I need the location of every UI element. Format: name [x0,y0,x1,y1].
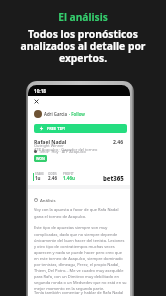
staticText: WON [36,156,45,161]
staticText: Este tipo de apuestas siempre son muy co… [34,225,127,291]
staticText: Análisis [40,197,56,202]
staticText: PROFIT [63,172,74,176]
staticText: ATP Acapulco · Ganador del torneo [34,147,98,152]
button[interactable]: Adri Garcia [34,110,85,118]
staticText: 2.46 [48,175,57,181]
button[interactable]: Close [34,99,39,104]
staticText: 10:18 [34,88,47,94]
staticText: Tenis · Hoy · ATP Acapulco [39,149,86,154]
staticText: bet365 [103,175,124,183]
staticText: 2.46 [113,139,124,146]
staticText: · Follow [69,111,85,117]
staticText: El análisis [0,10,166,24]
staticText: Todos los pronósticos analizados al deta… [10,27,156,66]
staticText: Outright Winner [34,143,64,148]
staticText: Rafael Nadal [34,139,67,146]
staticText: Adri Garcia [44,111,68,117]
staticText: Tenía también comentar y hablar de Rafa … [34,290,127,296]
staticText: 1.46u [63,175,75,181]
staticText: Voy con la apuesta a favor de que Rafa N… [34,207,127,219]
button[interactable]: FREE TIP! [34,124,127,133]
staticText: STAKE [35,172,44,176]
staticText: 1u [35,175,41,181]
staticText: FREE TIP! [47,126,65,131]
staticText: ODDS [48,172,57,176]
